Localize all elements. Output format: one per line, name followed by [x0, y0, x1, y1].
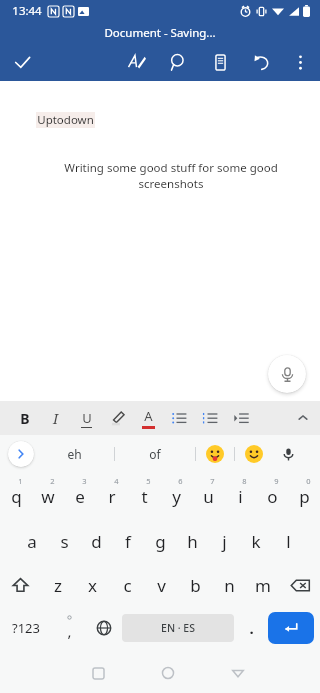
staticText: q [11, 485, 22, 508]
button[interactable]: a [16, 519, 48, 563]
staticText: 1 [18, 476, 23, 486]
staticText: 13:44 [12, 3, 42, 19]
staticText: i [238, 485, 243, 508]
staticText: o [267, 485, 278, 508]
button[interactable]: d [80, 519, 112, 563]
button[interactable]: of [115, 435, 195, 473]
button[interactable]: Bulleted list [164, 401, 195, 435]
button[interactable]: Emoji tongue [196, 435, 234, 473]
staticText: 5 [146, 476, 151, 486]
button[interactable]: Bold [9, 401, 40, 435]
button[interactable]: Mobile view [204, 46, 236, 78]
staticText: j [222, 530, 227, 553]
button[interactable]: Collapse [290, 405, 316, 431]
staticText: b [190, 574, 201, 597]
button[interactable]: r [96, 473, 128, 519]
staticText: 3 [82, 476, 87, 486]
button[interactable]: ?123 [0, 607, 52, 649]
staticText: d [91, 530, 102, 553]
staticText: w [41, 485, 55, 508]
button[interactable]: Comma [52, 607, 86, 649]
button[interactable]: e [64, 473, 96, 519]
button[interactable]: l [272, 519, 304, 563]
staticText: 2 [50, 476, 55, 486]
staticText: x [88, 574, 97, 597]
button[interactable]: s [48, 519, 80, 563]
staticText: 6 [178, 476, 183, 486]
button[interactable]: Backspace [280, 563, 320, 607]
button[interactable]: Highlight [102, 401, 133, 435]
button[interactable]: q [0, 473, 32, 519]
staticText: U [82, 409, 92, 427]
button[interactable]: eh [34, 435, 114, 473]
staticText: k [251, 530, 261, 553]
staticText: a [27, 530, 37, 553]
button[interactable]: x [75, 563, 110, 607]
staticText: u [203, 485, 214, 508]
staticText: g [155, 530, 166, 553]
button[interactable]: Voice input [273, 435, 303, 473]
staticText: n [224, 574, 235, 597]
button[interactable]: c [110, 563, 144, 607]
staticText: B [20, 409, 30, 428]
button[interactable]: Search [162, 46, 194, 78]
button[interactable]: Emoji smile [235, 435, 273, 473]
button[interactable]: j [208, 519, 240, 563]
staticText: A [144, 407, 153, 425]
staticText: c [123, 574, 132, 597]
button[interactable]: w [32, 473, 64, 519]
button[interactable]: Increase indent [226, 401, 257, 435]
staticText: 7 [210, 476, 215, 486]
staticText: 8 [242, 476, 247, 486]
button[interactable]: Dictate [268, 355, 306, 393]
button[interactable]: Font color [133, 401, 164, 435]
button[interactable]: Undo [246, 46, 278, 78]
button[interactable]: EN · ES [122, 614, 234, 642]
button[interactable]: Italic [40, 401, 71, 435]
staticText: l [286, 530, 291, 553]
staticText: p [299, 485, 310, 508]
button[interactable]: n [212, 563, 246, 607]
button[interactable]: i [224, 473, 256, 519]
staticText: z [54, 574, 62, 597]
button[interactable]: Done [0, 43, 44, 81]
button[interactable]: v [144, 563, 178, 607]
staticText: I [53, 409, 59, 428]
button[interactable]: Draw [120, 46, 152, 78]
button[interactable]: Underline [71, 401, 102, 435]
staticText: 9 [274, 476, 279, 486]
button[interactable]: Period [234, 607, 268, 649]
button[interactable]: h [176, 519, 208, 563]
staticText: Uptodown [37, 112, 94, 128]
button[interactable]: p [288, 473, 320, 519]
staticText: Writing some good stuff for some good sc… [36, 160, 306, 192]
staticText: Document - Saving... [104, 25, 216, 41]
button[interactable]: z [40, 563, 75, 607]
button[interactable]: Change language [86, 607, 122, 649]
button[interactable]: Home [148, 653, 188, 693]
staticText: ?123 [12, 619, 40, 637]
button[interactable]: m [246, 563, 280, 607]
button[interactable]: b [178, 563, 212, 607]
staticText: y [172, 485, 181, 508]
button[interactable]: Enter [268, 612, 314, 644]
button[interactable]: Recent apps [78, 653, 118, 693]
button[interactable]: Shift [0, 563, 40, 607]
staticText: 4 [114, 476, 119, 486]
staticText: of [149, 446, 161, 462]
button[interactable]: t [128, 473, 160, 519]
button[interactable]: f [112, 519, 144, 563]
staticText: EN · ES [161, 621, 195, 635]
button[interactable]: Back [218, 653, 258, 693]
staticText: . [249, 618, 254, 638]
staticText: t [141, 485, 148, 508]
button[interactable]: More options [284, 46, 316, 78]
button[interactable]: k [240, 519, 272, 563]
button[interactable]: u [192, 473, 224, 519]
staticText: r [108, 485, 116, 508]
button[interactable]: y [160, 473, 192, 519]
button[interactable]: Numbered list [195, 401, 226, 435]
button[interactable]: g [144, 519, 176, 563]
button[interactable]: More suggestions [8, 441, 34, 467]
button[interactable]: o [256, 473, 288, 519]
